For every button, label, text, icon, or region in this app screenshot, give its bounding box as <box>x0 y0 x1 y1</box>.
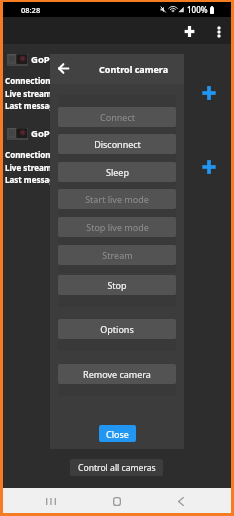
button[interactable]: Recent apps <box>39 489 63 513</box>
button[interactable]: GoPro <box>3 119 231 193</box>
button[interactable]: Home <box>105 489 129 513</box>
button[interactable]: Add camera to group <box>199 83 219 103</box>
button[interactable]: Connect <box>58 107 176 127</box>
staticText: Control all cameras <box>78 462 156 474</box>
staticText: Stop <box>107 279 127 291</box>
staticText: Live stream: <box>5 162 54 173</box>
button[interactable]: Stop <box>58 275 176 295</box>
staticText: Connection: <box>5 149 53 160</box>
button[interactable]: Options <box>58 319 176 339</box>
staticText: Live stream: <box>5 88 54 99</box>
button[interactable]: Sleep <box>58 162 176 182</box>
staticText: GoPro <box>31 53 60 66</box>
button[interactable]: Start live mode <box>58 189 176 209</box>
staticText: Connect <box>100 111 135 123</box>
staticText: Close <box>106 428 129 440</box>
button[interactable]: Stop live mode <box>58 217 176 237</box>
staticText: Stream <box>102 249 133 261</box>
button[interactable]: Add camera <box>178 20 201 43</box>
staticText: Last message: <box>5 100 62 111</box>
button[interactable]: Close <box>99 425 136 442</box>
staticText: 08:28 <box>21 5 41 15</box>
staticText: Disconnect <box>94 138 141 150</box>
button[interactable]: More options <box>207 20 230 43</box>
button[interactable]: GoPro <box>3 45 231 119</box>
button[interactable]: Back <box>53 58 74 79</box>
staticText: Options <box>100 323 134 335</box>
staticText: Start live mode <box>85 193 149 205</box>
staticText: 100% <box>187 4 208 15</box>
button[interactable]: Control all cameras <box>70 459 163 476</box>
button[interactable]: Add camera to group <box>199 157 219 177</box>
staticText: Remove camera <box>83 368 151 380</box>
button[interactable]: Stream <box>58 245 176 265</box>
staticText: GoPro <box>31 127 60 140</box>
button[interactable]: Back <box>169 489 193 513</box>
staticText: Connection: <box>5 75 53 86</box>
staticText: Stop live mode <box>86 221 149 233</box>
button[interactable]: Remove camera <box>58 364 176 384</box>
staticText: Last message: <box>5 174 62 185</box>
staticText: Sleep <box>106 166 129 178</box>
button[interactable]: Disconnect <box>58 134 176 154</box>
staticText: Control camera <box>99 63 169 75</box>
